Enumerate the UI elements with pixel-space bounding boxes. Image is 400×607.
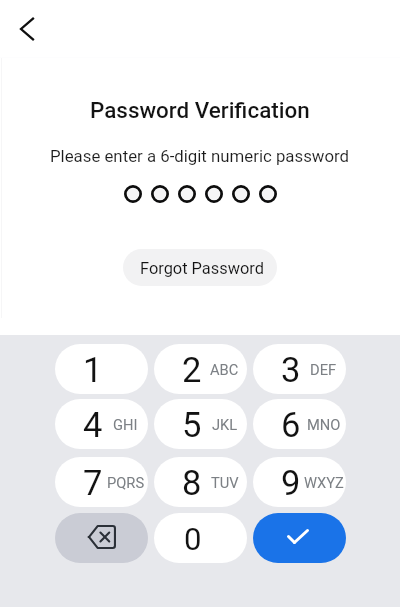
staticText: WXYZ bbox=[304, 474, 344, 491]
button[interactable]: 2 bbox=[154, 344, 247, 394]
button[interactable]: Confirm bbox=[253, 513, 346, 563]
button[interactable]: 8 bbox=[154, 457, 247, 507]
staticText: ABC bbox=[210, 361, 239, 378]
staticText: 5 bbox=[182, 405, 202, 445]
button[interactable]: Forgot Password bbox=[123, 249, 277, 286]
staticText: MNO bbox=[307, 416, 341, 433]
button[interactable]: 1 bbox=[55, 344, 148, 394]
staticText: 6 bbox=[281, 405, 301, 445]
button[interactable]: 3 bbox=[253, 344, 346, 394]
staticText: 8 bbox=[182, 463, 202, 503]
button[interactable]: Back bbox=[7, 9, 47, 49]
button[interactable]: Backspace bbox=[55, 513, 148, 563]
button[interactable]: 5 bbox=[154, 399, 247, 449]
staticText: Forgot Password bbox=[140, 259, 265, 278]
staticText: 9 bbox=[281, 463, 301, 503]
button[interactable]: 7 bbox=[55, 457, 148, 507]
staticText: Please enter a 6-digit numeric password bbox=[50, 146, 350, 166]
button[interactable]: 9 bbox=[253, 457, 346, 507]
button[interactable]: 0 bbox=[154, 513, 247, 563]
staticText: 3 bbox=[281, 350, 301, 390]
staticText: PQRS bbox=[107, 474, 145, 491]
button[interactable]: 6 bbox=[253, 399, 346, 449]
staticText: DEF bbox=[310, 361, 337, 378]
staticText: 0 bbox=[184, 521, 202, 558]
staticText: 1 bbox=[83, 350, 103, 390]
staticText: GHI bbox=[113, 416, 138, 433]
staticText: Password Verification bbox=[90, 97, 310, 123]
staticText: 2 bbox=[182, 350, 202, 390]
staticText: 4 bbox=[83, 405, 103, 445]
staticText: 7 bbox=[83, 463, 103, 503]
button[interactable]: 4 bbox=[55, 399, 148, 449]
staticText: TUV bbox=[211, 474, 239, 491]
staticText: JKL bbox=[212, 416, 238, 433]
